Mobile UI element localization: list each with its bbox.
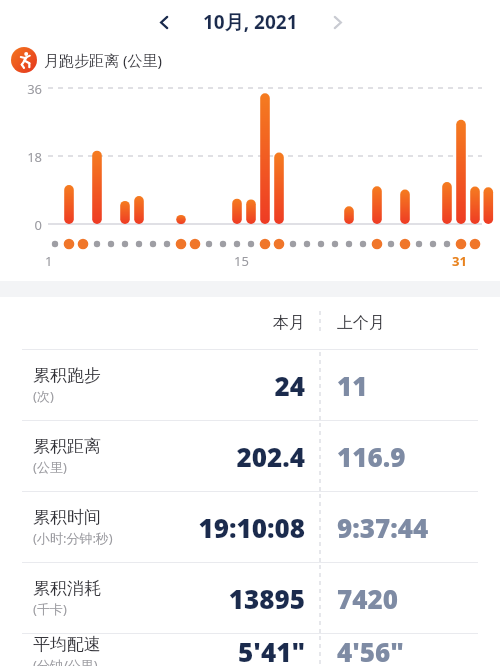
button[interactable]: 累积消耗 bbox=[12, 563, 488, 633]
staticText: 累积时间 bbox=[33, 507, 101, 528]
staticText: 10月, 2021 bbox=[203, 9, 298, 35]
button[interactable]: 累积距离 bbox=[12, 421, 488, 491]
button[interactable]: Previous month bbox=[145, 3, 183, 41]
staticText: 1 bbox=[45, 252, 53, 270]
staticText: 18 bbox=[0, 148, 42, 166]
staticText: (次) bbox=[33, 387, 54, 405]
staticText: 24 bbox=[12, 368, 305, 403]
staticText: 本月 bbox=[12, 313, 305, 333]
staticText: 36 bbox=[0, 80, 42, 98]
staticText: (分钟/公里) bbox=[33, 656, 98, 666]
staticText: 7420 bbox=[337, 581, 398, 616]
staticText: 116.9 bbox=[337, 439, 406, 474]
button[interactable]: 平均配速 bbox=[12, 634, 488, 666]
staticText: 上个月 bbox=[337, 313, 385, 333]
staticText: 累积跑步 bbox=[33, 365, 101, 386]
button[interactable]: 累积跑步 bbox=[12, 350, 488, 420]
staticText: 19:10:08 bbox=[12, 510, 305, 545]
staticText: (公里) bbox=[33, 458, 67, 476]
staticText: 5'41" bbox=[12, 634, 305, 666]
staticText: (千卡) bbox=[33, 600, 67, 618]
staticText: 11 bbox=[337, 368, 368, 403]
staticText: 累积消耗 bbox=[33, 578, 101, 599]
staticText: 13895 bbox=[12, 581, 305, 616]
button[interactable]: 累积时间 bbox=[12, 492, 488, 562]
staticText: 4'56" bbox=[337, 634, 404, 666]
staticText: 9:37:44 bbox=[337, 510, 429, 545]
staticText: 31 bbox=[452, 252, 467, 270]
staticText: (小时:分钟:秒) bbox=[33, 529, 113, 547]
staticText: 202.4 bbox=[12, 439, 305, 474]
staticText: 累积距离 bbox=[33, 436, 101, 457]
staticText: 15 bbox=[234, 252, 249, 270]
staticText: 月跑步距离 (公里) bbox=[44, 50, 162, 70]
staticText: 0 bbox=[0, 216, 42, 234]
staticText: 平均配速 bbox=[33, 634, 101, 655]
button[interactable]: Next month bbox=[318, 3, 356, 41]
